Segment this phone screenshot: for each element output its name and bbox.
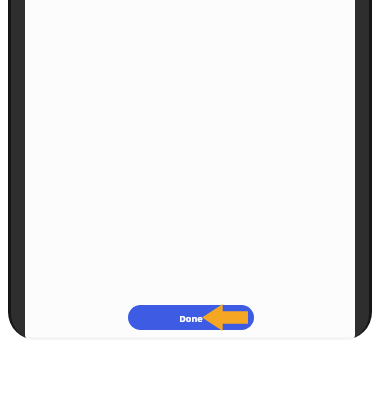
staticText: Done (179, 312, 203, 324)
button[interactable]: Done (128, 305, 254, 330)
